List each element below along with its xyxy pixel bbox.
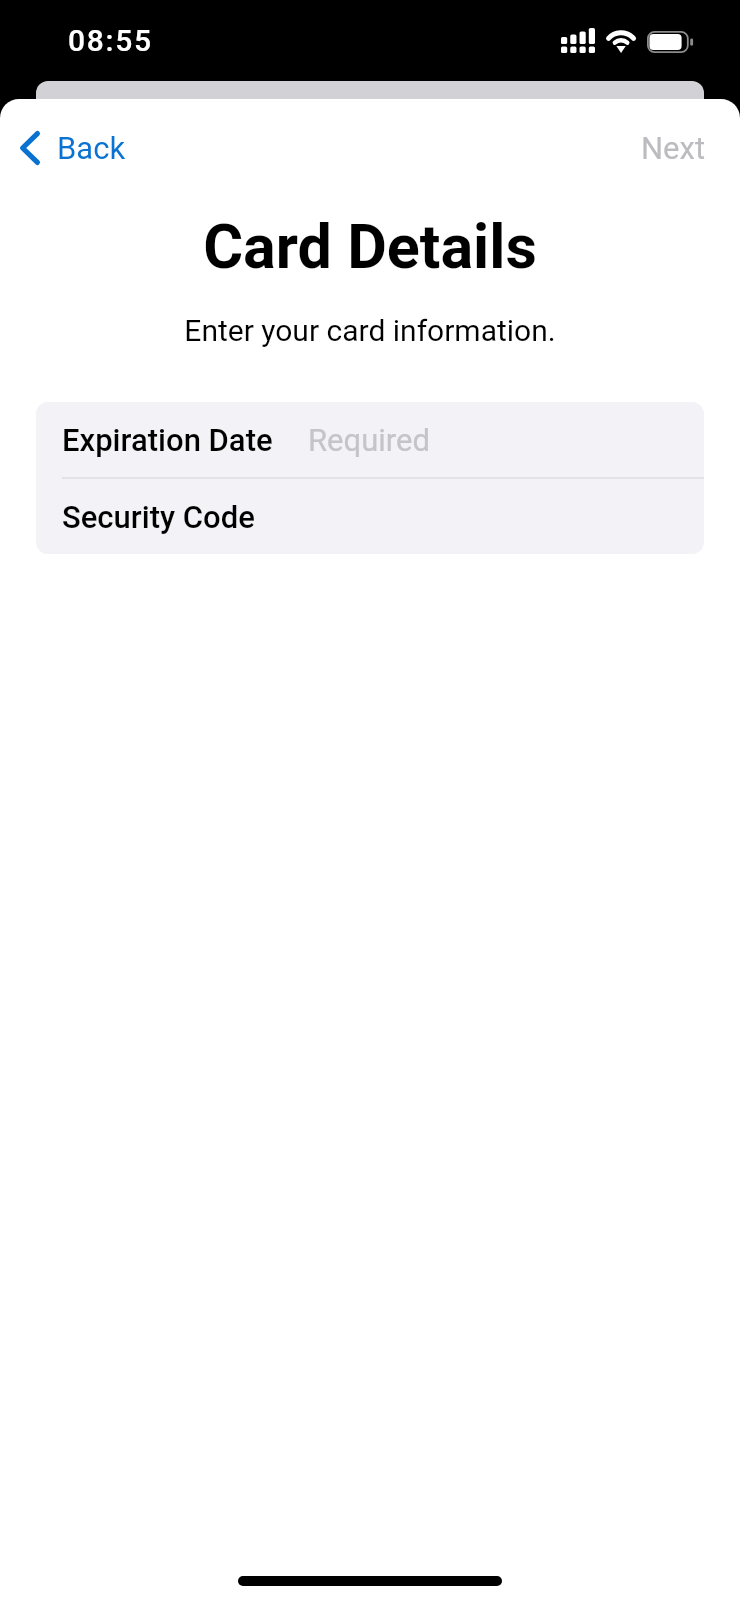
staticText: Card Details (0, 211, 740, 282)
staticText: Next (641, 130, 706, 166)
staticText: Enter your card information. (0, 313, 740, 348)
other: Cellular signal (561, 28, 595, 53)
staticText: Back (57, 130, 126, 166)
staticText: 08:55 (68, 23, 153, 58)
button[interactable]: Expiration Date (36, 402, 704, 477)
other: Wi-Fi (606, 29, 636, 53)
staticText: Required (308, 422, 430, 458)
button[interactable]: Security Code (36, 479, 704, 554)
staticText: Security Code (62, 499, 255, 535)
staticText: Expiration Date (62, 422, 273, 458)
button[interactable]: Back (0, 120, 140, 176)
other: Battery full (647, 31, 693, 53)
button[interactable]: Next (607, 118, 740, 178)
